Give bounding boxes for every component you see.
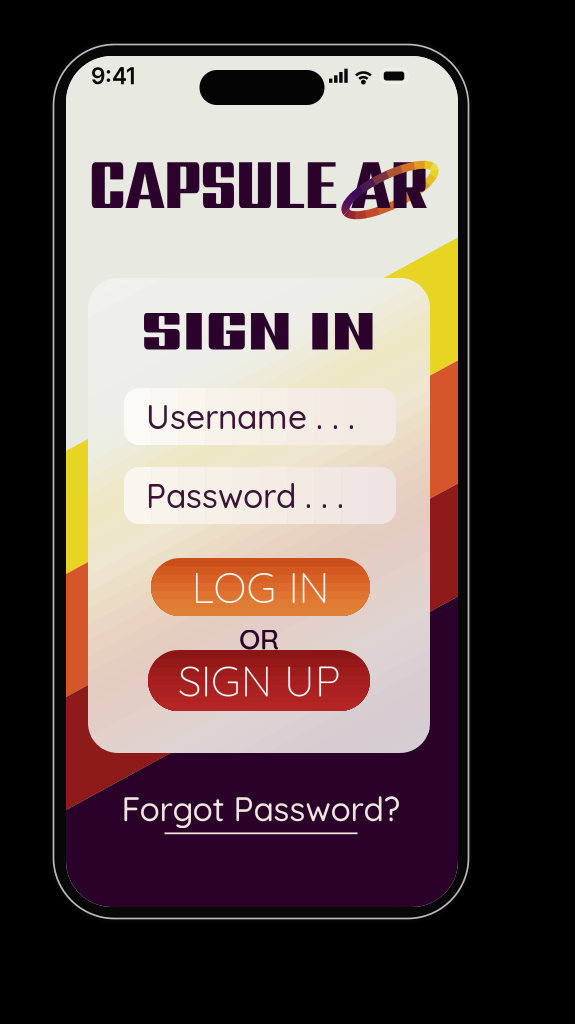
staticText: LOG IN (191, 560, 329, 614)
button[interactable]: Forgot Password? (121, 788, 400, 834)
button[interactable]: Username . . . (124, 388, 396, 445)
staticText: SIGN IN (141, 288, 376, 370)
button[interactable]: LOG IN (151, 558, 370, 616)
staticText: OR (239, 621, 279, 656)
staticText: Password . . . (146, 475, 344, 516)
staticText: CAPSULE AR (89, 130, 575, 234)
button[interactable]: SIGN UP (148, 650, 370, 711)
staticText: 9:41 (91, 62, 135, 90)
button[interactable]: Password . . . (124, 467, 396, 524)
staticText: SIGN UP (178, 654, 340, 707)
staticText: Forgot Password? (121, 788, 400, 829)
staticText: Username . . . (146, 396, 355, 437)
